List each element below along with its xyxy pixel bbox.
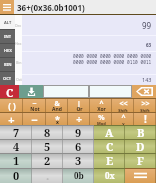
staticText: Mod [97,121,106,126]
staticText: 0x [105,170,115,181]
staticText: Not [30,106,40,113]
button[interactable]: >> [134,98,156,112]
staticText: HEX [4,48,12,53]
button[interactable]: 1 [0,153,32,168]
staticText: 5 [44,139,51,153]
button[interactable]: C [0,85,19,98]
button[interactable]: | [68,98,90,112]
staticText: 63 [146,42,152,48]
staticText: Hex [15,41,22,46]
staticText: * [55,113,60,125]
staticText: F [137,153,144,168]
staticText: . [46,168,50,183]
button[interactable]: − [23,112,46,125]
button[interactable]: ( ) [0,98,23,112]
staticText: >> [141,99,150,109]
staticText: 99 [142,20,152,31]
staticText: + [8,112,15,125]
button[interactable]: B [125,125,156,139]
button[interactable]: * [46,112,68,125]
button[interactable]: 6 [63,139,94,153]
staticText: Shift [140,108,150,113]
button[interactable]: C [94,139,125,153]
staticText: 3 [75,153,82,168]
staticText: Oct [16,77,22,82]
staticText: x [56,119,59,126]
staticText: INT [4,34,12,39]
button[interactable]: 9 [63,125,94,139]
button[interactable]: HEX [0,43,15,57]
button[interactable] [125,168,156,183]
button[interactable]: ^ [90,98,112,112]
staticText: 36+(0x36.0b1001) [17,2,85,13]
staticText: 0 [13,168,20,183]
button[interactable]: 2 [32,153,63,168]
button[interactable]: Menu [0,0,14,14]
button[interactable]: 3 [63,153,94,168]
staticText: 1 [13,153,20,168]
button[interactable]: E [94,153,125,168]
staticText: 2 [44,153,51,168]
button[interactable]: 0 [0,168,32,183]
button[interactable]: 5 [32,139,63,153]
staticText: E [106,153,114,168]
staticText: 143 [142,76,152,83]
staticText: ( ) [8,100,16,111]
button[interactable]: + [0,112,23,125]
button[interactable]: ~ [23,98,46,112]
staticText: Or [76,106,83,113]
staticText: ÷ [76,112,82,125]
staticText: 8 [44,125,51,139]
staticText: ALT [4,20,12,25]
button[interactable]: INT [0,29,15,43]
button[interactable]: ! [134,112,156,125]
staticText: y [122,121,125,126]
staticText: BIN [4,62,12,67]
staticText: 4 [13,139,20,153]
button[interactable]: 7 [0,125,32,139]
staticText: Bin [16,60,22,65]
staticText: Xor [97,106,106,113]
button[interactable]: OCT [0,71,15,85]
staticText: 0000 0000 0000 0000 0000 0000 [73,53,152,59]
button[interactable]: 0x [94,168,125,183]
staticText: And [52,106,62,113]
staticText: ^ [121,113,126,123]
staticText: << [119,99,128,109]
button[interactable]: BIN [0,57,15,71]
button[interactable]: ÷ [68,112,90,125]
staticText: A [105,125,114,139]
staticText: 0000 0000 0000 0000 0110 0011 [73,59,152,65]
staticText: − [31,112,38,125]
staticText: B [137,125,145,139]
staticText: 9 [75,125,82,139]
staticText: ! [144,112,147,125]
staticText: ^ [99,99,104,109]
button[interactable]: F [125,153,156,168]
button[interactable]: A [94,125,125,139]
staticText: 0b [74,170,84,181]
button[interactable]: 8 [32,125,63,139]
staticText: 7 [13,125,20,139]
staticText: C [106,139,114,153]
staticText: OCT [3,76,12,81]
button[interactable]: % [90,112,112,125]
button[interactable]: & [46,98,68,112]
staticText: 6 [75,139,82,153]
staticText: Shift [118,108,128,113]
button[interactable]: ^ [112,112,134,125]
button[interactable]: Save [19,85,43,98]
button[interactable]: Backspace [132,85,156,98]
staticText: C [6,85,14,98]
staticText: D [136,139,145,153]
button[interactable]: 0b [63,168,94,183]
button[interactable]: ALT [0,15,15,29]
button[interactable]: 4 [0,139,32,153]
staticText: % [98,113,105,123]
staticText: | [77,99,81,109]
button[interactable]: D [125,139,156,153]
button[interactable]: . [32,168,63,183]
button[interactable]: << [112,98,134,112]
